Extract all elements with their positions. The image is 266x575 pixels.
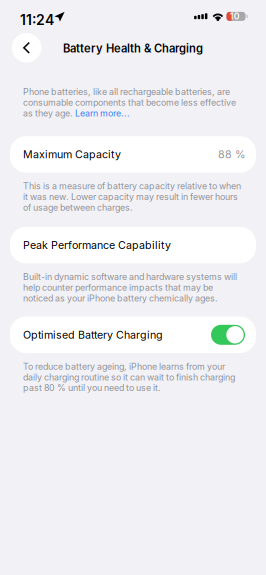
- staticText: 88 %: [218, 148, 245, 161]
- button[interactable]: Maximum Capacity: [10, 136, 256, 173]
- staticText: Built-in dynamic software and hardware s…: [23, 271, 237, 304]
- button[interactable]: Back: [12, 33, 41, 63]
- staticText: To reduce battery ageing, iPhone learns …: [23, 361, 235, 393]
- staticText: Battery Health & Charging: [63, 42, 203, 55]
- staticText: Peak Performance Capability: [23, 239, 171, 252]
- staticText: Optimised Battery Charging: [23, 328, 163, 341]
- staticText: 11:24: [20, 11, 54, 28]
- button[interactable]: Optimised Battery Charging: [10, 317, 256, 353]
- staticText: Maximum Capacity: [23, 148, 121, 161]
- staticText: Phone batteries, like all rechargeable b…: [23, 86, 236, 119]
- staticText: 10: [230, 11, 240, 22]
- staticText: This is a measure of battery capacity re…: [23, 181, 241, 213]
- button[interactable]: Peak Performance Capability: [10, 227, 256, 263]
